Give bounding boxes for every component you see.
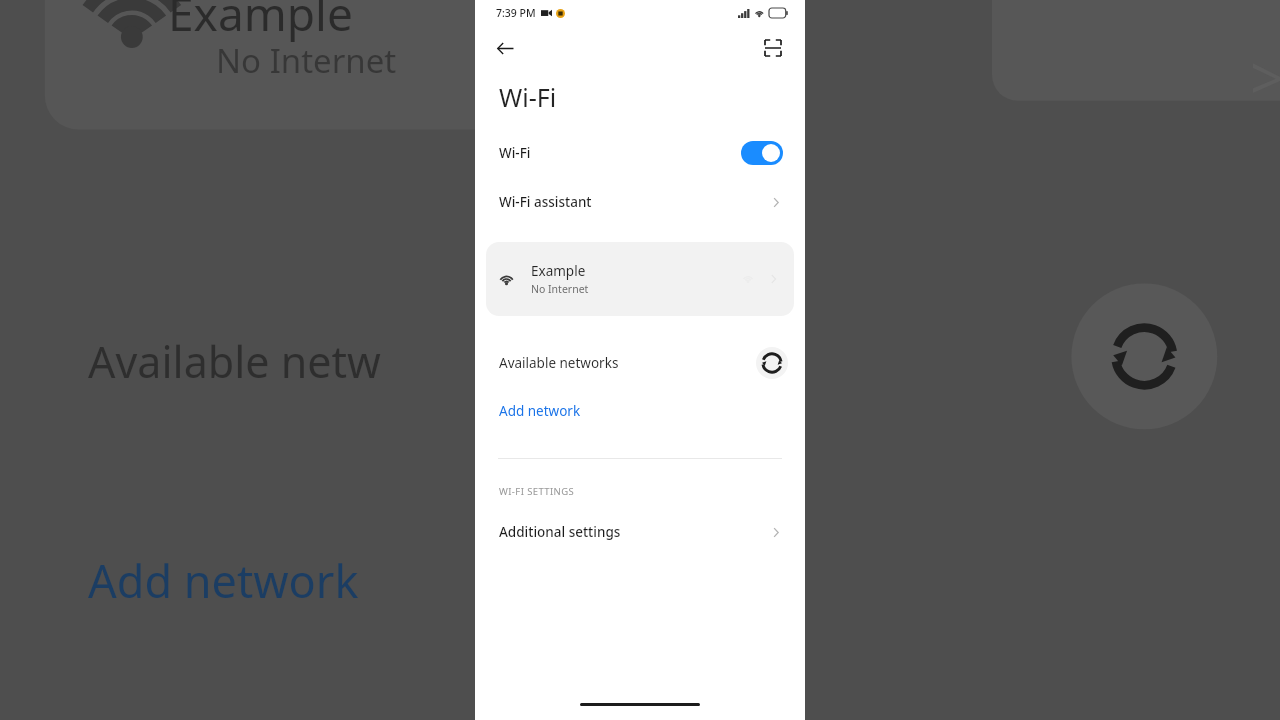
button[interactable]: Wi-Fi <box>475 131 805 175</box>
button[interactable]: Scan QR code <box>755 30 791 66</box>
button[interactable]: Refresh networks <box>756 347 788 379</box>
button[interactable]: Back <box>487 30 523 66</box>
staticText: Available netw <box>88 332 381 391</box>
button[interactable]: Example <box>486 242 794 316</box>
staticText: Example <box>531 262 586 280</box>
staticText: No Internet <box>531 282 589 296</box>
button[interactable]: Add network <box>475 394 805 428</box>
staticText: Additional settings <box>499 523 621 541</box>
staticText: Wi-Fi assistant <box>499 193 592 211</box>
staticText: No Internet <box>216 38 397 83</box>
staticText: Add network <box>499 402 581 420</box>
staticText: Wi-Fi <box>499 144 531 162</box>
button[interactable]: Wi-Fi on <box>741 141 783 165</box>
staticText: Available networks <box>499 354 619 372</box>
staticText: Add network <box>88 550 359 611</box>
staticText: Wi-Fi <box>499 80 557 114</box>
staticText: > <box>1250 36 1280 118</box>
staticText: 7:39 PM <box>496 6 536 20</box>
button[interactable]: Wi-Fi assistant <box>475 180 805 224</box>
button[interactable]: Additional settings <box>475 512 805 552</box>
staticText: WI-FI SETTINGS <box>499 485 575 498</box>
staticText: Example <box>168 0 353 45</box>
